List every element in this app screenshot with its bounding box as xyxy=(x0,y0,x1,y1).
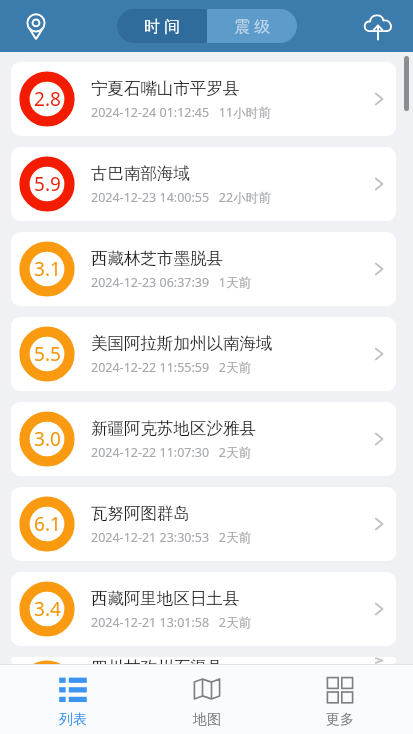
button[interactable]: 列表 xyxy=(13,664,133,734)
staticText: 震 级 xyxy=(234,15,271,37)
button[interactable]: 更多 xyxy=(280,664,400,734)
staticText: 美国阿拉斯加州以南海域 xyxy=(91,333,273,354)
staticText: 时 间 xyxy=(144,15,181,37)
staticText: 新疆阿克苏地区沙雅县 xyxy=(91,418,256,439)
button[interactable]: 3.0 xyxy=(11,402,396,476)
staticText: 3.1 xyxy=(34,256,61,282)
button[interactable]: 3.1 xyxy=(11,232,396,306)
staticText: 2024-12-22 11:07:30 2天前 xyxy=(91,444,252,461)
button[interactable]: Location xyxy=(14,4,58,48)
staticText: 瓦努阿图群岛 xyxy=(91,503,190,524)
staticText: 5.5 xyxy=(34,341,61,367)
staticText: 2024-12-22 11:55:59 2天前 xyxy=(91,359,252,376)
button[interactable]: 2.8 xyxy=(11,62,396,136)
button[interactable]: Upload xyxy=(355,3,401,49)
staticText: 古巴南部海域 xyxy=(91,163,190,184)
staticText: 2024-12-24 01:12:45 11小时前 xyxy=(91,104,271,121)
staticText: 2.8 xyxy=(34,86,61,112)
staticText: 西藏林芝市墨脱县 xyxy=(91,248,223,269)
staticText: 5.9 xyxy=(34,171,61,197)
staticText: 2024-12-23 14:00:55 22小时前 xyxy=(91,189,271,206)
staticText: 2024-12-23 06:37:39 1天前 xyxy=(91,274,252,291)
staticText: 3.0 xyxy=(34,426,61,452)
button[interactable]: 5.5 xyxy=(11,317,396,391)
button[interactable]: 时 间 xyxy=(117,9,207,43)
button[interactable]: 4.2 xyxy=(11,657,396,664)
staticText: 列表 xyxy=(59,711,87,729)
button[interactable]: 6.1 xyxy=(11,487,396,561)
button[interactable]: 地图 xyxy=(147,664,267,734)
staticText: 2024-12-21 23:30:53 2天前 xyxy=(91,529,252,546)
staticText: 地图 xyxy=(193,711,221,729)
staticText: 宁夏石嘴山市平罗县 xyxy=(91,78,240,99)
button[interactable]: 5.9 xyxy=(11,147,396,221)
button[interactable]: 震 级 xyxy=(207,9,297,43)
staticText: 4.2 xyxy=(34,657,61,664)
staticText: 西藏阿里地区日土县 xyxy=(91,588,240,609)
staticText: 6.1 xyxy=(34,511,61,537)
staticText: 更多 xyxy=(326,711,354,729)
staticText: 3.4 xyxy=(34,596,61,622)
staticText: 四川甘孜州石渠县 xyxy=(91,657,223,664)
staticText: 2024-12-21 13:01:58 2天前 xyxy=(91,614,252,631)
button[interactable]: 3.4 xyxy=(11,572,396,646)
